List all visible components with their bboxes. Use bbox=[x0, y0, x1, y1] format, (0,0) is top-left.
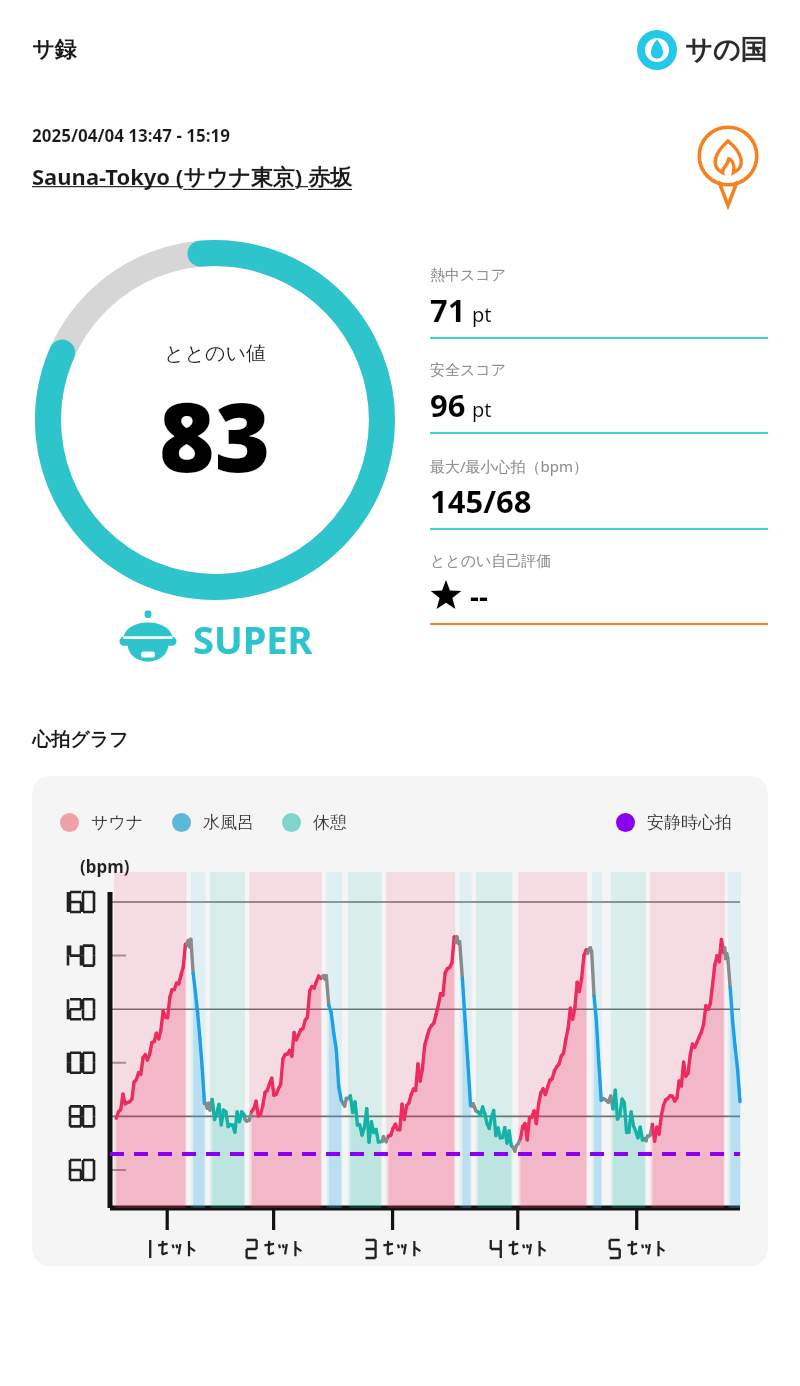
staticText: ととのい値 bbox=[164, 341, 266, 366]
staticText: 最大/最小心拍（bpm） bbox=[430, 456, 589, 476]
staticText: 安静時心拍 bbox=[647, 812, 732, 833]
staticText: 心拍グラフ bbox=[32, 728, 129, 752]
staticText: 96 bbox=[430, 384, 466, 426]
button[interactable]: 熱中スコア bbox=[430, 266, 768, 339]
staticText: 71 bbox=[430, 289, 466, 331]
button[interactable]: 安静時心拍 bbox=[616, 812, 732, 833]
staticText: SUPER bbox=[193, 613, 313, 665]
staticText: pt bbox=[472, 396, 492, 423]
staticText: 水風呂 bbox=[203, 812, 254, 833]
button[interactable]: Sauna-Tokyo (サウナ東京) 赤坂 bbox=[32, 161, 352, 191]
staticText: 145/68 bbox=[430, 480, 532, 522]
staticText: 休憩 bbox=[313, 812, 347, 833]
button[interactable]: ととのい自己評価 bbox=[430, 552, 768, 625]
staticText: ととのい自己評価 bbox=[430, 552, 552, 571]
staticText: (bpm) bbox=[80, 855, 130, 878]
staticText: サの国 bbox=[685, 33, 768, 67]
button[interactable]: サウナ熱量 bbox=[688, 124, 768, 204]
staticText: サウナ bbox=[91, 812, 144, 833]
button[interactable]: サの国 bbox=[637, 30, 768, 70]
staticText: -- bbox=[470, 577, 488, 615]
button[interactable]: 休憩 bbox=[282, 812, 347, 833]
staticText: pt bbox=[472, 301, 492, 328]
button[interactable]: 水風呂 bbox=[172, 812, 254, 833]
staticText: サ録 bbox=[32, 36, 77, 64]
button[interactable]: 安全スコア bbox=[430, 361, 768, 434]
button[interactable]: SUPER bbox=[117, 608, 313, 670]
staticText: 安全スコア bbox=[430, 361, 507, 380]
staticText: 83 bbox=[159, 370, 271, 499]
staticText: 2025/04/04 13:47 - 15:19 bbox=[32, 124, 230, 147]
button[interactable]: サウナ bbox=[32, 776, 768, 1266]
button[interactable]: サウナ bbox=[60, 812, 144, 833]
button[interactable]: 最大/最小心拍（bpm） bbox=[430, 456, 768, 530]
staticText: 熱中スコア bbox=[430, 266, 507, 285]
